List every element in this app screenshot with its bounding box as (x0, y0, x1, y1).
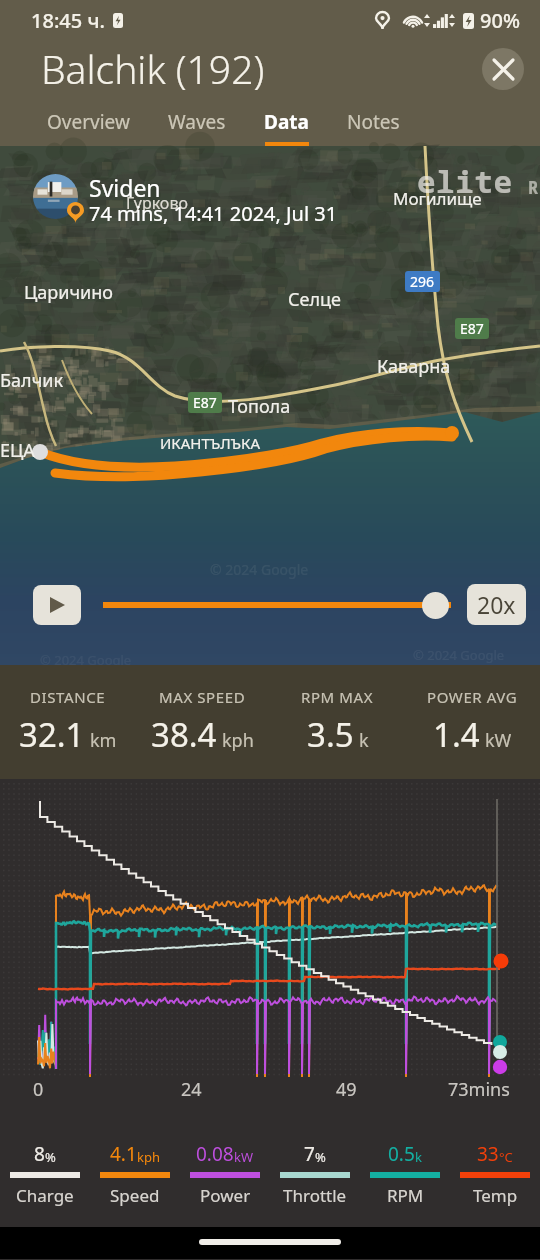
staticText: DISTANCE (30, 687, 106, 707)
button[interactable]: RPM MAX (270, 665, 405, 779)
staticText: elite (417, 160, 513, 202)
button[interactable]: 8 (0, 1127, 90, 1219)
button[interactable]: Play (33, 585, 81, 625)
button[interactable]: 20x (467, 584, 526, 625)
staticText: 18:45 ч. (31, 7, 105, 34)
button[interactable]: Close (482, 48, 524, 90)
staticText: kph (222, 728, 254, 753)
staticText: RPM (387, 1184, 424, 1207)
staticText: 74 mins, 14:41 2024, Jul 31 (89, 200, 338, 227)
staticText: Notes (347, 109, 400, 135)
staticText: 90% (480, 7, 520, 34)
button[interactable]: Seek position (422, 592, 449, 619)
staticText: Balchik (192) (41, 42, 265, 95)
button[interactable]: Notes (328, 97, 419, 146)
staticText: k (415, 1148, 422, 1166)
button[interactable]: 7 (270, 1127, 360, 1219)
staticText: Data (264, 109, 309, 135)
staticText: Power (200, 1184, 251, 1207)
staticText: Throttle (283, 1184, 347, 1207)
staticText: Temp (473, 1184, 518, 1207)
staticText: °C (499, 1148, 513, 1166)
staticText: 0.5 (388, 1141, 415, 1167)
staticText: R (528, 176, 539, 199)
staticText: 7 (304, 1141, 315, 1167)
staticText: Speed (110, 1184, 160, 1207)
staticText: 8 (34, 1141, 45, 1167)
staticText: ИКАНТЪЛЪКА (160, 433, 261, 453)
staticText: 24 (181, 1077, 202, 1102)
staticText: Могилище (393, 187, 482, 210)
button[interactable]: POWER AVG (405, 665, 540, 779)
staticText: 0 (33, 1077, 44, 1102)
staticText: Гурково (126, 192, 188, 214)
staticText: 49 (336, 1077, 357, 1102)
staticText: Overview (47, 109, 130, 135)
button[interactable]: DISTANCE (0, 665, 135, 779)
staticText: % (45, 1148, 56, 1166)
staticText: Топола (228, 394, 291, 419)
staticText: % (315, 1148, 326, 1166)
staticText: Балчик (0, 368, 63, 393)
button[interactable]: Waves (149, 97, 245, 146)
staticText: MAX SPEED (159, 687, 246, 707)
staticText: Е87 (193, 393, 217, 412)
staticText: © 2024 Google (413, 646, 505, 664)
staticText: km (90, 728, 117, 753)
staticText: 73mins (448, 1077, 510, 1102)
staticText: kW (485, 728, 512, 753)
staticText: 0.08 (196, 1141, 234, 1167)
staticText: Charge (16, 1184, 74, 1207)
staticText: 296 (410, 272, 435, 291)
staticText: Селце (288, 287, 341, 312)
staticText: Waves (168, 109, 226, 135)
staticText: kph (137, 1148, 160, 1166)
staticText: Царичино (24, 280, 113, 305)
staticText: © 2024 Google (40, 651, 132, 669)
button[interactable]: 33 (450, 1127, 540, 1219)
staticText: kW (234, 1148, 254, 1166)
staticText: Sviden (89, 172, 161, 203)
staticText: RPM MAX (301, 687, 374, 707)
staticText: 1.4 (433, 712, 480, 757)
staticText: 3.5 (307, 712, 354, 757)
button[interactable]: 0.5 (360, 1127, 450, 1219)
button[interactable]: Overview (28, 97, 149, 146)
staticText: 20x (477, 589, 516, 620)
staticText: Каварна (377, 354, 451, 379)
staticText: 38.4 (151, 712, 217, 757)
staticText: Е87 (460, 319, 484, 338)
staticText: © 2024 Google (210, 560, 309, 579)
staticText: ЕЦА (0, 438, 35, 463)
button[interactable]: 0.08 (180, 1127, 270, 1219)
button[interactable]: 4.1 (90, 1127, 180, 1219)
staticText: 32.1 (19, 712, 85, 757)
staticText: 33 (477, 1141, 499, 1167)
button[interactable]: Data (245, 97, 328, 146)
staticText: POWER AVG (427, 687, 518, 707)
staticText: 4.1 (110, 1141, 137, 1167)
button[interactable]: MAX SPEED (135, 665, 270, 779)
staticText: k (359, 728, 369, 753)
